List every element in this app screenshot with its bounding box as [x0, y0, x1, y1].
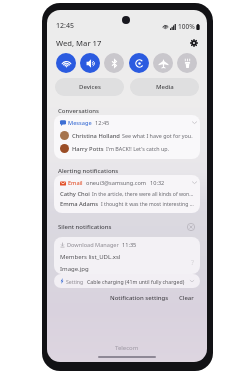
- staticText: 12:45: [56, 21, 74, 31]
- button[interactable]: Notification settings: [108, 291, 171, 305]
- staticText: Download Manager: [67, 241, 119, 249]
- staticText: Email: [68, 179, 83, 187]
- staticText: Conversations: [58, 107, 99, 115]
- button[interactable]: Settings: [188, 37, 200, 49]
- staticText: 100%: [178, 22, 195, 31]
- staticText: Message: [68, 119, 92, 127]
- button[interactable]: Auto rotate: [129, 53, 149, 73]
- staticText: I'm BACK!! Let's catch up.: [106, 145, 170, 152]
- staticText: Alerting notifications: [58, 167, 119, 175]
- staticText: Silent notifications: [58, 223, 112, 231]
- staticText: Harry Potts: [72, 145, 104, 153]
- staticText: Devices: [79, 83, 101, 91]
- staticText: In the article, there were all kinds of …: [92, 191, 195, 198]
- button[interactable]: Setting: [54, 274, 200, 288]
- button[interactable]: Message: [54, 115, 200, 159]
- staticText: Cable charging (41m until fully charged): [87, 278, 189, 285]
- button[interactable]: Clear: [177, 291, 196, 305]
- staticText: 12:45: [95, 119, 110, 127]
- button[interactable]: Flashlight: [177, 53, 197, 73]
- staticText: Wed, Mar 17: [56, 38, 102, 48]
- staticText: See what I have got for you.: [122, 132, 193, 139]
- staticText: Media: [156, 83, 174, 91]
- button[interactable]: Devices: [55, 78, 124, 96]
- staticText: I thought it was the most interesting th…: [101, 201, 195, 208]
- button[interactable]: Media: [130, 78, 199, 96]
- staticText: 10:32: [150, 179, 165, 187]
- button[interactable]: Bluetooth: [104, 53, 124, 73]
- staticText: Members list_UDL.xsl: [60, 253, 121, 261]
- staticText: Clear: [179, 294, 194, 302]
- staticText: 11:35: [122, 241, 137, 249]
- staticText: Setting: [66, 278, 84, 285]
- staticText: Christina Holland: [72, 132, 120, 140]
- staticText: Telecom: [115, 344, 139, 352]
- button[interactable]: Sound: [80, 53, 100, 73]
- button[interactable]: Wi-Fi: [56, 53, 76, 73]
- staticText: Notification settings: [110, 294, 169, 302]
- staticText: Emma Adams: [60, 200, 99, 208]
- staticText: Image.jpg: [60, 265, 89, 273]
- staticText: oneui3@samsung.com: [86, 179, 147, 187]
- button[interactable]: Airplane mode: [153, 53, 173, 73]
- button[interactable]: Dismiss all: [186, 222, 196, 232]
- button[interactable]: Email: [54, 175, 200, 213]
- staticText: Cathy Choi: [60, 190, 90, 198]
- button[interactable]: Download Manager: [54, 237, 200, 274]
- staticText: ?: [191, 258, 195, 268]
